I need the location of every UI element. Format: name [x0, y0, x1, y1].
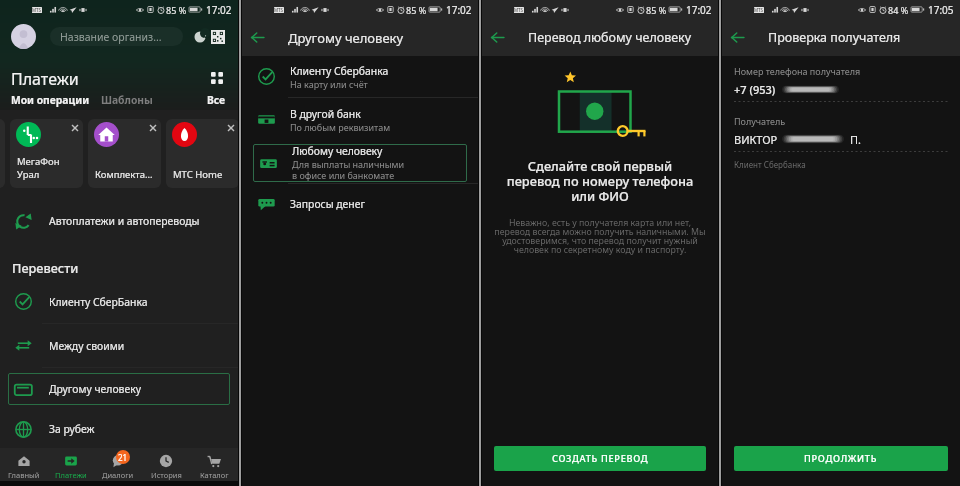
staticText: В другой банк: [290, 107, 361, 121]
button[interactable]: Remove: [222, 119, 239, 136]
staticText: 21: [118, 452, 128, 463]
staticText: Проверка получателя: [768, 29, 901, 46]
button[interactable]: 21: [94, 448, 142, 481]
staticText: Автоплатежи и автопереводы: [49, 214, 200, 228]
staticText: +7 (953): [734, 82, 776, 96]
staticText: Перевод любому человеку: [528, 29, 692, 46]
staticText: Для выплаты наличными в офисе или банком…: [292, 158, 405, 182]
staticText: 17:02: [446, 3, 472, 17]
staticText: Номер телефона получателя: [734, 65, 861, 77]
button[interactable]: Scan QR code: [211, 30, 225, 44]
button[interactable]: Remove: [144, 119, 161, 136]
staticText: Клиенту Сбербанка: [290, 64, 389, 78]
button[interactable]: Back: [482, 22, 513, 53]
staticText: Клиенту СберБанка: [49, 295, 148, 309]
button[interactable]: Название организ…: [50, 27, 183, 46]
staticText: Диалоги: [102, 470, 134, 480]
button[interactable]: Night mode: [193, 30, 206, 43]
staticText: История: [151, 470, 182, 480]
button[interactable]: Клиенту Сбербанка: [242, 56, 478, 97]
staticText: СОЗДАТЬ ПЕРЕВОД: [552, 452, 649, 465]
staticText: Любому человеку: [292, 144, 383, 158]
staticText: 85 %: [406, 4, 427, 16]
button[interactable]: Главный: [0, 448, 47, 481]
button[interactable]: Remove: [66, 119, 83, 136]
staticText: Платежи: [11, 68, 79, 88]
staticText: Комплекта…: [95, 168, 153, 181]
staticText: Платежи: [55, 470, 87, 480]
staticText: Название организ…: [60, 30, 162, 44]
staticText: 85 %: [166, 4, 187, 16]
staticText: Другому человеку: [288, 29, 404, 47]
button[interactable]: СОЗДАТЬ ПЕРЕВОД: [494, 446, 706, 471]
button[interactable]: ПРОДОЛЖИТЬ: [734, 446, 948, 471]
button[interactable]: Автоплатежи и автопереводы: [0, 202, 238, 237]
button[interactable]: За рубеж: [0, 410, 238, 448]
button[interactable]: Profile: [11, 24, 36, 49]
staticText: Сделайте свой первый перевод по номеру т…: [486, 157, 714, 205]
button[interactable]: Платежи: [47, 448, 94, 481]
staticText: 17:05: [928, 3, 954, 17]
staticText: Между своими: [49, 339, 125, 353]
staticText: Получатель: [734, 115, 786, 127]
button[interactable]: История: [142, 448, 190, 481]
button[interactable]: В другой банк: [242, 99, 478, 140]
staticText: 17:02: [206, 3, 232, 17]
button[interactable]: Back: [242, 22, 273, 53]
button[interactable]: Каталог: [190, 448, 238, 481]
button[interactable]: МТС Home: [166, 119, 239, 188]
button[interactable]: МегаФон Урал: [10, 119, 83, 188]
button[interactable]: Шаблоны: [101, 93, 153, 107]
staticText: ВИКТОР: [734, 132, 778, 146]
staticText: MTS: [514, 7, 524, 13]
staticText: MTS: [32, 7, 42, 13]
staticText: По любым реквизитам: [290, 121, 391, 133]
staticText: На карту или счёт: [290, 78, 368, 90]
button[interactable]: All services: [208, 69, 226, 87]
staticText: МТС Home: [173, 168, 223, 181]
staticText: Другому человеку: [49, 382, 141, 396]
button[interactable]: Клиенту СберБанка: [0, 280, 238, 323]
button[interactable]: Все: [207, 93, 226, 107]
button[interactable]: Другому человеку: [8, 373, 230, 405]
staticText: 17:02: [686, 3, 712, 17]
staticText: За рубеж: [49, 422, 95, 436]
staticText: Перевести: [12, 259, 79, 276]
staticText: Запросы денег: [290, 197, 365, 211]
staticText: Неважно, есть у получателя карта или нет…: [486, 217, 714, 256]
button[interactable]: Мои операции: [11, 93, 90, 107]
staticText: 85 %: [646, 4, 667, 16]
button[interactable]: Запросы денег: [242, 184, 478, 223]
staticText: Каталог: [200, 470, 229, 480]
staticText: Главный: [8, 470, 40, 480]
staticText: П.: [850, 132, 862, 146]
button[interactable]: Комплекта…: [88, 119, 161, 188]
staticText: MTS: [274, 7, 284, 13]
staticText: МегаФон Урал: [17, 155, 60, 181]
staticText: 84 %: [888, 4, 909, 16]
staticText: Клиент Сбербанка: [734, 159, 806, 170]
staticText: MTS: [754, 7, 764, 13]
button[interactable]: Между своими: [0, 324, 238, 367]
button[interactable]: Любому человеку: [253, 144, 467, 182]
button[interactable]: Back: [722, 22, 753, 53]
staticText: ПРОДОЛЖИТЬ: [804, 452, 878, 465]
